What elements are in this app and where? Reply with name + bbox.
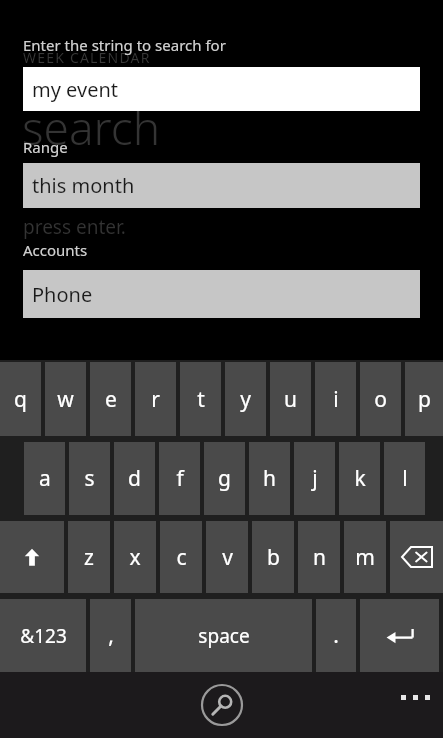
button[interactable]: t	[180, 362, 221, 436]
button[interactable]: Enter	[360, 599, 439, 672]
staticText: tap the search icon, type a string and	[23, 182, 354, 208]
staticText: f	[176, 464, 184, 493]
button[interactable]: k	[339, 442, 380, 515]
button[interactable]: space	[135, 599, 312, 672]
button[interactable]: p	[405, 362, 443, 436]
button[interactable]: v	[206, 521, 248, 593]
staticText: m	[355, 543, 375, 572]
button[interactable]: z	[68, 521, 110, 593]
button[interactable]: o	[360, 362, 401, 436]
staticText: r	[151, 385, 160, 414]
button[interactable]: u	[270, 362, 311, 436]
staticText: c	[176, 543, 187, 572]
staticText: u	[284, 385, 297, 414]
staticText: y	[240, 385, 251, 414]
button[interactable]: s	[69, 442, 110, 515]
staticText: search	[22, 96, 161, 159]
button[interactable]: i	[315, 362, 356, 436]
staticText: x	[129, 543, 141, 572]
staticText: v	[222, 543, 233, 572]
button[interactable]: r	[135, 362, 176, 436]
staticText: Range	[23, 137, 68, 157]
staticText: a	[39, 464, 51, 493]
staticText: my event	[32, 76, 118, 103]
button[interactable]: q	[0, 362, 41, 436]
staticText: d	[128, 464, 141, 493]
staticText: this month	[32, 172, 135, 199]
button[interactable]: ,	[90, 599, 131, 672]
button[interactable]: e	[90, 362, 131, 436]
button[interactable]: c	[160, 521, 202, 593]
button[interactable]: n	[298, 521, 340, 593]
staticText: j	[312, 464, 318, 493]
staticText: Accounts	[23, 240, 88, 260]
staticText: Enter the string to search for	[23, 35, 226, 55]
staticText: press enter.	[23, 214, 126, 240]
button[interactable]: Phone	[23, 270, 420, 318]
button[interactable]: a	[24, 442, 65, 515]
staticText: l	[402, 464, 408, 493]
button[interactable]: &123	[0, 599, 86, 672]
staticText: h	[263, 464, 276, 493]
button[interactable]: d	[114, 442, 155, 515]
staticText: e	[105, 385, 117, 414]
staticText: w	[57, 385, 74, 414]
staticText: i	[333, 385, 339, 414]
button[interactable]: w	[45, 362, 86, 436]
button[interactable]: f	[159, 442, 200, 515]
button[interactable]: g	[204, 442, 245, 515]
staticText: z	[84, 543, 94, 572]
staticText: s	[84, 464, 95, 493]
staticText: b	[267, 543, 280, 572]
button[interactable]: Shift	[0, 521, 64, 593]
staticText: .	[333, 621, 339, 650]
button[interactable]: Backspace	[390, 521, 443, 593]
staticText: WEEK CALENDAR	[23, 48, 151, 67]
button[interactable]: Search	[196, 679, 248, 731]
button[interactable]: More options	[387, 677, 443, 717]
button[interactable]: m	[344, 521, 386, 593]
staticText: t	[197, 385, 205, 414]
staticText: n	[313, 543, 326, 572]
staticText: q	[14, 385, 27, 414]
staticText: o	[374, 385, 387, 414]
button[interactable]: y	[225, 362, 266, 436]
staticText: k	[354, 464, 366, 493]
staticText: Phone	[32, 281, 93, 308]
staticText: p	[418, 385, 431, 414]
button[interactable]: my event	[23, 67, 420, 111]
button[interactable]: b	[252, 521, 294, 593]
button[interactable]: j	[294, 442, 335, 515]
staticText: ,	[108, 621, 114, 650]
staticText: g	[218, 464, 231, 493]
button[interactable]: l	[384, 442, 425, 515]
button[interactable]: h	[249, 442, 290, 515]
staticText: &123	[20, 623, 67, 649]
staticText: space	[198, 623, 250, 649]
button[interactable]: x	[114, 521, 156, 593]
button[interactable]: .	[316, 599, 356, 672]
button[interactable]: this month	[23, 163, 420, 208]
